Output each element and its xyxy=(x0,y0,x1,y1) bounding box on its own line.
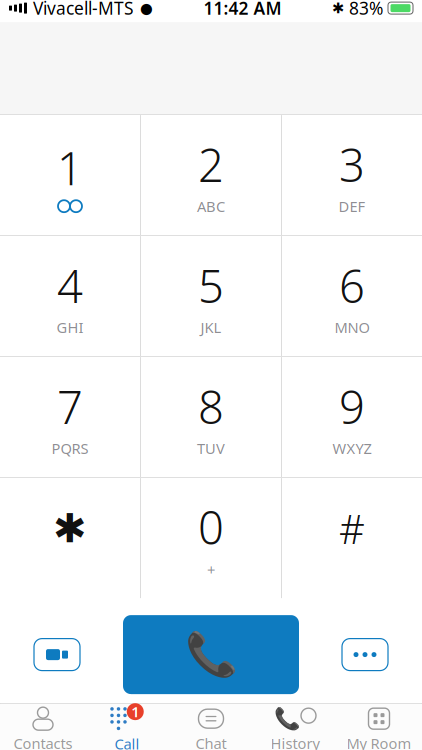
button[interactable]: 5 xyxy=(141,236,281,356)
staticText: Call xyxy=(114,734,139,750)
staticText: # xyxy=(339,502,365,555)
button[interactable]: 2 xyxy=(141,115,281,235)
staticText: TUV xyxy=(197,438,225,458)
staticText: Contacts xyxy=(13,734,72,750)
staticText: PQRS xyxy=(51,438,88,458)
staticText: + xyxy=(207,560,215,579)
staticText: 9 xyxy=(339,376,365,436)
button[interactable]: 0 xyxy=(141,478,281,598)
staticText: 0 xyxy=(198,497,224,557)
staticText: 8 xyxy=(198,376,224,436)
button[interactable]: ✱ xyxy=(0,478,140,598)
button[interactable]: 3 xyxy=(282,115,422,235)
button[interactable]: Video call xyxy=(16,621,98,689)
staticText: 📞 xyxy=(184,630,237,679)
staticText: 1 xyxy=(131,702,139,721)
staticText: 📞 xyxy=(274,706,301,731)
staticText: Chat xyxy=(195,734,226,750)
button[interactable]: Chat xyxy=(169,704,253,750)
button[interactable]: 1 xyxy=(85,704,169,750)
button[interactable]: 9 xyxy=(282,357,422,477)
staticText: Vivacell-MTS xyxy=(33,0,134,20)
button[interactable]: More options xyxy=(324,621,406,689)
staticText: 11:42 AM xyxy=(203,0,281,20)
staticText: 4 xyxy=(57,255,83,315)
staticText: 5 xyxy=(198,255,224,315)
staticText: 83% xyxy=(349,0,383,20)
staticText: MNO xyxy=(334,317,369,337)
button[interactable]: 7 xyxy=(0,357,140,477)
button[interactable]: 📞 xyxy=(253,704,337,750)
button[interactable]: Call xyxy=(123,615,299,694)
button[interactable]: 1 xyxy=(0,115,140,235)
staticText: ● xyxy=(140,0,153,16)
staticText: 6 xyxy=(339,255,365,315)
staticText: ✱ xyxy=(53,506,87,551)
staticText: 3 xyxy=(339,134,365,194)
staticText: WXYZ xyxy=(332,438,371,458)
button[interactable]: 4 xyxy=(0,236,140,356)
staticText: 2 xyxy=(198,134,224,194)
staticText: ABC xyxy=(197,196,225,216)
staticText: JKL xyxy=(200,317,221,337)
button[interactable]: 8 xyxy=(141,357,281,477)
button[interactable]: # xyxy=(282,478,422,598)
staticText: DEF xyxy=(338,196,365,216)
button[interactable]: Contacts xyxy=(1,704,85,750)
staticText: My Room xyxy=(346,734,411,750)
staticText: GHI xyxy=(56,317,83,337)
staticText: 1 xyxy=(57,137,83,198)
staticText: ✱ xyxy=(332,0,344,16)
staticText: 7 xyxy=(57,376,83,436)
staticText: History xyxy=(270,734,319,750)
button[interactable]: 6 xyxy=(282,236,422,356)
button[interactable]: My Room xyxy=(337,704,421,750)
